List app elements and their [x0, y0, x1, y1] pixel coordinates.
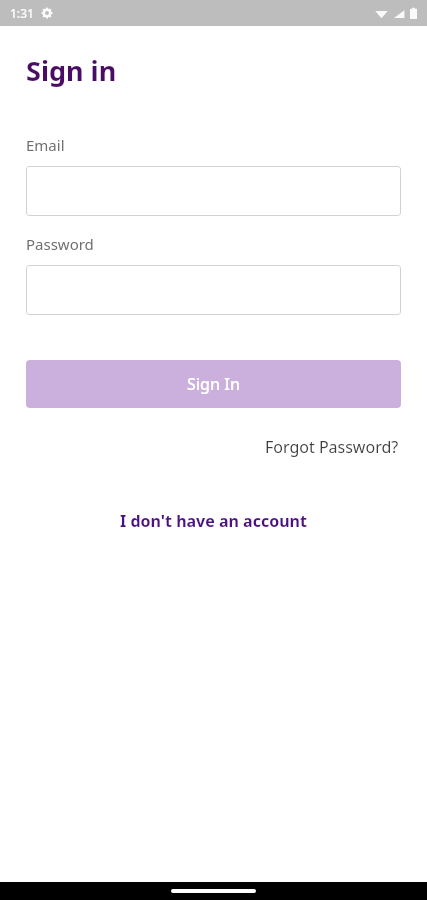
button[interactable]: Forgot Password?	[263, 432, 401, 462]
button[interactable]: Text input field	[26, 166, 401, 216]
staticText: Forgot Password?	[265, 436, 399, 458]
button[interactable]: Sign In	[26, 360, 401, 408]
staticText: Password	[26, 234, 94, 254]
button[interactable]: Text input field	[26, 265, 401, 315]
staticText: 1:31	[10, 5, 34, 21]
button[interactable]: I don't have an account	[114, 506, 313, 536]
staticText: Sign in	[26, 52, 117, 89]
staticText: Email	[26, 135, 65, 155]
staticText: I don't have an account	[120, 510, 307, 532]
staticText: Sign In	[187, 373, 240, 395]
